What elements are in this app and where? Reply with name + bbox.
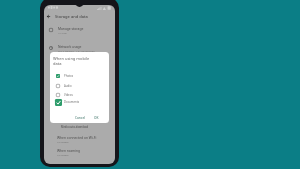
staticText: Network usage: [58, 44, 82, 48]
staticText: OK: [94, 116, 99, 120]
staticText: Media auto-download: [61, 125, 89, 129]
staticText: No media: [57, 140, 69, 143]
staticText: 327.4 MB sent · 1.51 GB received: [58, 49, 95, 52]
button[interactable]: OK: [93, 115, 100, 121]
staticText: When connected on Wi-Fi: [57, 135, 97, 139]
staticText: Audio: [64, 84, 72, 88]
staticText: 13.4 GB: [58, 31, 67, 34]
button[interactable]: Manage storage: [44, 24, 115, 36]
staticText: Videos: [64, 93, 73, 97]
button[interactable]: Audio: [50, 81, 109, 91]
button[interactable]: Back: [44, 11, 115, 22]
staticText: Cancel: [75, 116, 86, 120]
staticText: Documents: [64, 100, 80, 104]
other: Back: [47, 15, 50, 18]
button[interactable]: Documents: [50, 97, 109, 107]
staticText: Manage storage: [58, 26, 84, 30]
staticText: No media: [57, 153, 69, 156]
button[interactable]: Cancel: [74, 115, 87, 121]
staticText: Storage and data: [55, 14, 88, 19]
button[interactable]: Network usage: [44, 42, 115, 54]
staticText: When using mobile data: [53, 56, 91, 66]
button[interactable]: When roaming: [44, 147, 115, 159]
staticText: When roaming: [57, 148, 80, 152]
staticText: Photos: [64, 74, 74, 78]
button[interactable]: Videos: [50, 90, 109, 100]
button[interactable]: Photos: [50, 71, 109, 81]
button[interactable]: When connected on Wi-Fi: [44, 134, 115, 146]
